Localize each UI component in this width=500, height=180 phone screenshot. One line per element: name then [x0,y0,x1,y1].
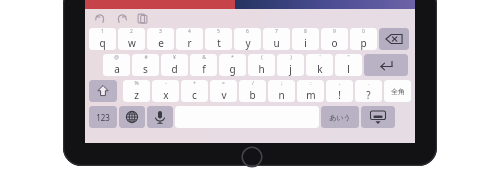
staticText: 2 [130,28,133,35]
staticText: b [249,88,256,102]
staticText: # [144,54,148,61]
button[interactable]: # [132,54,159,76]
button[interactable]: : [297,80,324,102]
button[interactable]: ( [248,54,275,76]
staticText: 6 [246,28,249,35]
button[interactable]: Redo [113,10,129,26]
staticText: r [187,36,192,50]
staticText: ) [290,54,292,61]
staticText: ; [281,80,283,87]
staticText: 1 [101,28,104,35]
staticText: e [158,36,164,50]
button[interactable]: 8 [292,28,319,50]
button[interactable]: " [335,54,362,76]
button[interactable]: Undo [92,10,108,26]
staticText: f [202,62,206,76]
staticText: * [231,54,234,61]
staticText: a [114,62,120,76]
button[interactable]: * [219,54,246,76]
button[interactable]: Backspace [379,28,409,50]
staticText: " [347,54,350,61]
button[interactable]: 7 [263,28,290,50]
button[interactable]: Return [364,54,408,76]
staticText: u [273,36,280,50]
button[interactable]: / [239,80,266,102]
staticText: - [165,80,167,87]
button[interactable]: Paste [134,10,150,26]
staticText: . [368,80,370,87]
staticText: c [192,88,197,102]
button[interactable]: ) [277,54,304,76]
button[interactable]: , [326,80,353,102]
staticText: d [171,62,178,76]
staticText: i [304,36,307,50]
staticText: 0 [362,28,365,35]
button[interactable]: . [355,80,382,102]
staticText: p [360,36,367,50]
staticText: : [310,80,312,87]
button[interactable]: - [152,80,179,102]
staticText: h [258,62,265,76]
staticText: s [143,62,148,76]
staticText: 4 [188,28,191,35]
staticText: / [252,80,254,87]
staticText: j [289,62,292,76]
staticText: z [134,88,139,102]
staticText: ' [319,54,321,61]
staticText: ( [261,54,263,61]
button[interactable]: & [190,54,217,76]
button[interactable]: 0 [350,28,377,50]
button[interactable]: 2 [118,28,145,50]
staticText: l [347,62,350,76]
staticText: + [193,80,196,87]
staticText: x [163,88,169,102]
staticText: g [229,62,236,76]
button[interactable]: 4 [176,28,203,50]
staticText: m [306,88,316,102]
button[interactable]: ; [268,80,295,102]
staticText: & [202,54,206,61]
staticText: 7 [275,28,278,35]
staticText: ¥ [173,54,176,61]
button[interactable]: 5 [205,28,232,50]
button[interactable]: ' [306,54,333,76]
staticText: = [222,80,225,87]
staticText: t [217,36,221,50]
button[interactable]: 全角 [384,80,411,102]
button[interactable]: Switch keyboard [119,106,145,128]
button[interactable]: 3 [147,28,174,50]
staticText: n [278,88,285,102]
button[interactable]: Hide keyboard [361,106,395,128]
staticText: w [128,36,136,50]
staticText: ? [366,88,371,102]
button[interactable]: 123 [89,106,117,128]
staticText: 5 [217,28,220,35]
staticText: y [245,36,251,50]
button[interactable]: = [210,80,237,102]
button[interactable]: + [181,80,208,102]
button[interactable]: Shift [89,80,117,102]
staticText: o [331,36,338,50]
staticText: 全角 [391,87,405,96]
staticText: % [134,80,139,87]
staticText: あいう [329,113,351,122]
staticText: v [221,88,227,102]
staticText: ! [338,88,341,102]
button[interactable]: 9 [321,28,348,50]
staticText: 8 [304,28,307,35]
button[interactable]: 1 [89,28,116,50]
staticText: @ [114,54,119,61]
button[interactable]: ¥ [161,54,188,76]
button[interactable]: Home [241,146,263,168]
button[interactable]: @ [103,54,130,76]
button[interactable]: あいう [321,106,359,128]
button[interactable]: 6 [234,28,261,50]
staticText: 3 [159,28,162,35]
staticText: 123 [96,112,110,123]
staticText: 9 [333,28,336,35]
button[interactable]: % [123,80,150,102]
staticText: q [99,36,106,50]
staticText: , [339,80,341,87]
button[interactable]: Dictation [147,106,173,128]
